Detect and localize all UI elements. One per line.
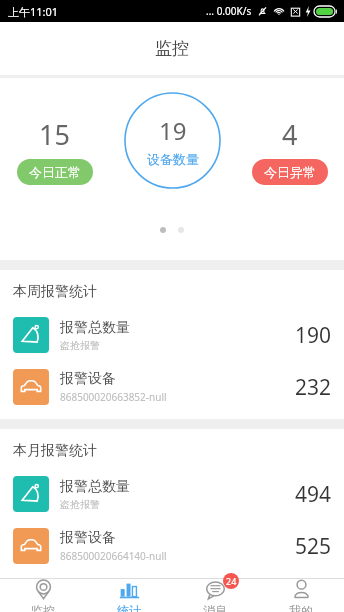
button[interactable]: 报警设备: [0, 520, 344, 572]
other: 消息: [205, 579, 226, 600]
button[interactable]: 今日异常: [252, 159, 328, 185]
staticText: 报警设备: [60, 529, 116, 547]
button[interactable]: 今日正常: [17, 159, 93, 185]
staticText: 报警总数量: [60, 478, 130, 496]
staticText: 本月报警统计: [13, 442, 97, 460]
staticText: 统计: [117, 603, 141, 612]
button[interactable]: 报警总数量: [0, 309, 344, 361]
staticText: 232: [294, 373, 331, 402]
staticText: 今日正常: [29, 164, 81, 180]
staticText: 24: [226, 575, 237, 587]
staticText: ... 0.00K/s: [206, 4, 252, 18]
button[interactable]: 我的: [258, 579, 344, 612]
staticText: 报警总数量: [60, 319, 130, 337]
staticText: 19: [159, 114, 187, 147]
staticText: 今日异常: [264, 164, 316, 180]
button[interactable]: 统计: [86, 579, 172, 612]
other: 统计: [119, 579, 140, 600]
staticText: 15: [39, 116, 70, 153]
staticText: 盗抢报警: [60, 339, 100, 352]
staticText: 4: [282, 116, 298, 153]
button[interactable]: 19: [124, 92, 221, 189]
staticText: 本周报警统计: [13, 283, 97, 301]
button[interactable]: 监控: [0, 579, 86, 612]
button[interactable]: 报警总数量: [0, 468, 344, 520]
other: 监控: [33, 579, 54, 600]
staticText: 190: [294, 321, 331, 350]
staticText: 525: [294, 532, 331, 561]
button[interactable]: 报警设备: [0, 361, 344, 413]
staticText: 消息: [203, 603, 227, 612]
staticText: 868500020663852-null: [60, 390, 167, 404]
staticText: 我的: [289, 603, 313, 612]
staticText: 报警设备: [60, 370, 116, 388]
staticText: 监控: [31, 603, 55, 612]
staticText: 868500020664140-null: [60, 549, 167, 563]
staticText: 盗抢报警: [60, 498, 100, 511]
staticText: 494: [294, 480, 331, 509]
staticText: 设备数量: [147, 151, 199, 167]
staticText: 上午11:01: [8, 4, 59, 19]
other: 我的: [291, 579, 312, 600]
button[interactable]: 消息: [172, 579, 258, 612]
staticText: 监控: [155, 38, 189, 59]
